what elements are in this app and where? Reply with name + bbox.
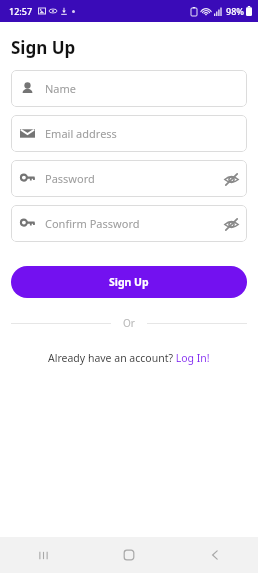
staticText: Already have an account? Log In! (48, 351, 210, 365)
button[interactable]: Name (11, 70, 247, 107)
button[interactable]: Toggle password visibility (218, 211, 244, 237)
staticText: 12:57 (9, 5, 33, 17)
staticText: Password (45, 171, 95, 186)
button[interactable]: Email address (11, 115, 247, 152)
button[interactable]: Confirm Password (11, 205, 247, 242)
staticText: Or (123, 316, 135, 330)
staticText: Name (45, 81, 77, 96)
staticText: Sign Up (109, 275, 149, 289)
staticText: 98% (226, 5, 244, 17)
button[interactable]: Home (86, 537, 172, 573)
button[interactable]: Already have an account? Log In! (48, 351, 210, 365)
button[interactable]: Sign Up (11, 266, 247, 298)
staticText: Email address (45, 126, 117, 141)
button[interactable]: Back (172, 537, 258, 573)
button[interactable]: Toggle password visibility (218, 166, 244, 192)
button[interactable]: Recent apps (0, 537, 86, 573)
button[interactable]: Password (11, 160, 247, 197)
staticText: Sign Up (11, 36, 76, 59)
staticText: Confirm Password (45, 216, 140, 231)
